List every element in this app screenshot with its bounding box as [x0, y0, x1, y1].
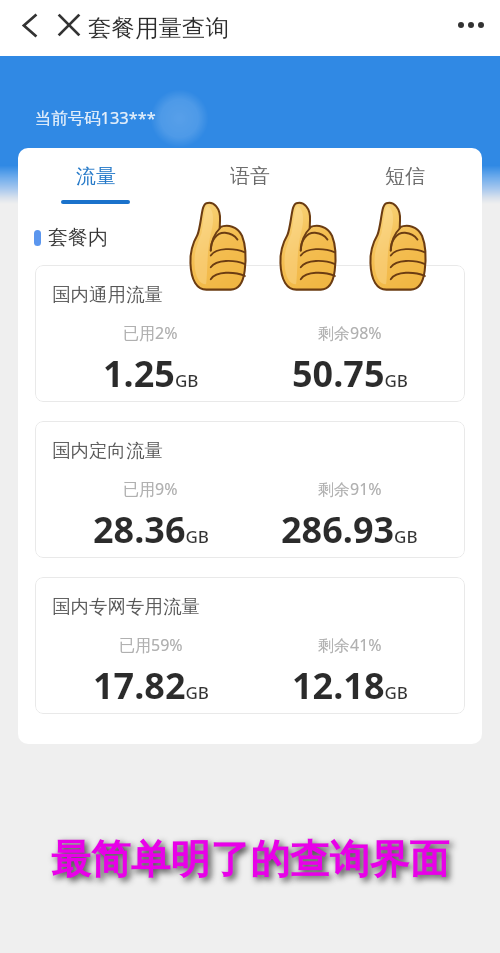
staticText: 剩余91% [318, 478, 382, 500]
button[interactable]: Back [12, 7, 48, 43]
staticText: 已用9% [123, 478, 178, 500]
staticText: 短信 [385, 164, 425, 189]
staticText: 286.93GB [281, 505, 418, 554]
staticText: 国内通用流量 [52, 283, 163, 306]
button[interactable]: 国内定向流量 [35, 421, 465, 558]
staticText: 剩余98% [318, 322, 382, 344]
staticText: 套餐用量查询 [88, 13, 229, 43]
button[interactable]: 语音 [172, 148, 327, 204]
staticText: 剩余41% [318, 634, 382, 656]
button[interactable]: 国内专网专用流量 [35, 577, 465, 714]
button[interactable]: 短信 [327, 148, 482, 204]
staticText: 套餐内 [48, 225, 108, 250]
button[interactable]: More options [451, 5, 491, 45]
staticText: 17.82GB [93, 661, 209, 710]
button[interactable]: Close [51, 7, 87, 43]
staticText: 当前号码133*** [35, 106, 156, 128]
staticText: 语音 [230, 164, 270, 189]
staticText: 国内专网专用流量 [52, 595, 200, 618]
staticText: 流量 [76, 164, 116, 189]
button[interactable]: 流量 [18, 148, 172, 204]
staticText: 50.75GB [292, 349, 408, 398]
staticText: 1.25GB [103, 349, 199, 398]
staticText: 最简单明了的查询界面 [51, 835, 449, 885]
staticText: 国内定向流量 [52, 439, 163, 462]
button[interactable]: 国内通用流量 [35, 265, 465, 402]
staticText: 已用59% [119, 634, 183, 656]
staticText: 28.36GB [93, 505, 209, 554]
staticText: 已用2% [123, 322, 178, 344]
staticText: 12.18GB [292, 661, 408, 710]
